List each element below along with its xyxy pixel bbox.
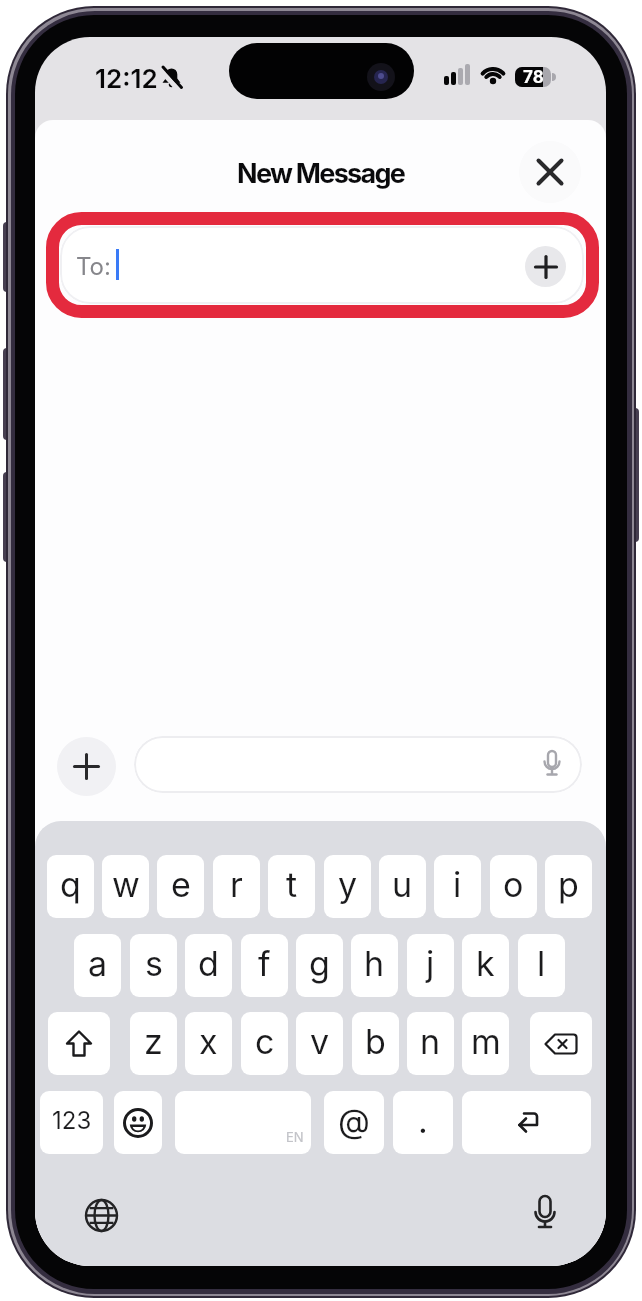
button[interactable]: m (462, 1012, 509, 1075)
staticText: h (364, 943, 385, 984)
staticText: k (476, 943, 495, 984)
button[interactable]: a (74, 934, 121, 997)
button[interactable]: i (434, 855, 481, 918)
staticText: c (255, 1021, 275, 1062)
button[interactable] (530, 1012, 592, 1075)
button[interactable]: s (130, 934, 177, 997)
staticText: m (471, 1021, 501, 1062)
button[interactable] (57, 737, 116, 796)
staticText: u (392, 864, 413, 905)
staticText: New Message (237, 157, 405, 190)
staticText: t (286, 864, 298, 905)
staticText: z (144, 1021, 163, 1062)
button[interactable]: o (490, 855, 537, 918)
button[interactable]: d (185, 934, 232, 997)
button[interactable]: u (379, 855, 426, 918)
staticText: a (88, 943, 108, 984)
staticText: l (537, 943, 546, 984)
staticText: e (171, 864, 191, 905)
staticText: y (338, 864, 358, 905)
staticText: n (420, 1021, 441, 1062)
button[interactable]: w (102, 855, 149, 918)
staticText: To: (76, 252, 111, 281)
button[interactable] (48, 1012, 110, 1075)
staticText: o (503, 864, 524, 905)
staticText: b (365, 1021, 386, 1062)
staticText: v (310, 1021, 330, 1062)
button[interactable]: EN (175, 1091, 311, 1154)
button[interactable] (60, 226, 584, 304)
button[interactable] (525, 246, 566, 287)
button[interactable]: k (462, 934, 509, 997)
button[interactable]: . (393, 1091, 453, 1154)
staticText: w (112, 864, 140, 905)
button[interactable]: y (324, 855, 371, 918)
staticText: EN (286, 1129, 304, 1145)
staticText: x (199, 1021, 218, 1062)
button[interactable]: v (296, 1012, 343, 1075)
button[interactable]: @ (324, 1091, 384, 1154)
staticText: f (258, 943, 271, 984)
button[interactable]: z (130, 1012, 177, 1075)
button[interactable] (462, 1091, 591, 1154)
button[interactable]: j (407, 934, 454, 997)
button[interactable] (79, 1193, 123, 1237)
staticText: s (145, 943, 163, 984)
staticText: d (198, 943, 219, 984)
button[interactable]: c (241, 1012, 288, 1075)
staticText: . (418, 1100, 428, 1141)
button[interactable]: g (296, 934, 343, 997)
button[interactable] (134, 736, 582, 793)
button[interactable]: q (47, 855, 94, 918)
button[interactable]: l (518, 934, 565, 997)
button[interactable]: e (157, 855, 204, 918)
staticText: 123 (52, 1106, 92, 1135)
button[interactable]: p (545, 855, 592, 918)
staticText: r (230, 864, 243, 905)
staticText: 12:12 (95, 63, 158, 92)
button[interactable]: n (407, 1012, 454, 1075)
button[interactable] (519, 141, 581, 203)
button[interactable]: f (241, 934, 288, 997)
button[interactable]: t (268, 855, 315, 918)
button[interactable]: 123 (40, 1091, 103, 1154)
button[interactable] (523, 1189, 567, 1239)
button[interactable]: x (185, 1012, 232, 1075)
button[interactable]: h (351, 934, 398, 997)
staticText: 78 (523, 67, 544, 87)
staticText: j (426, 943, 435, 984)
staticText: q (60, 864, 81, 905)
button[interactable]: r (213, 855, 260, 918)
staticText: p (558, 864, 579, 905)
staticText: i (453, 864, 462, 905)
staticText: @ (338, 1101, 370, 1141)
button[interactable]: b (352, 1012, 399, 1075)
button[interactable] (114, 1091, 162, 1154)
staticText: g (309, 943, 330, 984)
